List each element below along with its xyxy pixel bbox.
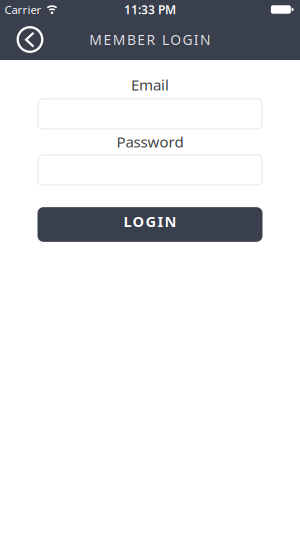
button[interactable]: Email: [0, 99, 300, 129]
button[interactable]: LOGIN: [0, 207, 300, 242]
staticText: 11:33 PM: [124, 1, 176, 18]
button[interactable]: Back: [16, 26, 43, 53]
staticText: Carrier: [4, 2, 41, 17]
staticText: MEMBER LOGIN: [89, 30, 211, 49]
staticText: Password: [116, 131, 183, 152]
staticText: Email: [131, 74, 169, 95]
staticText: LOGIN: [123, 211, 176, 231]
